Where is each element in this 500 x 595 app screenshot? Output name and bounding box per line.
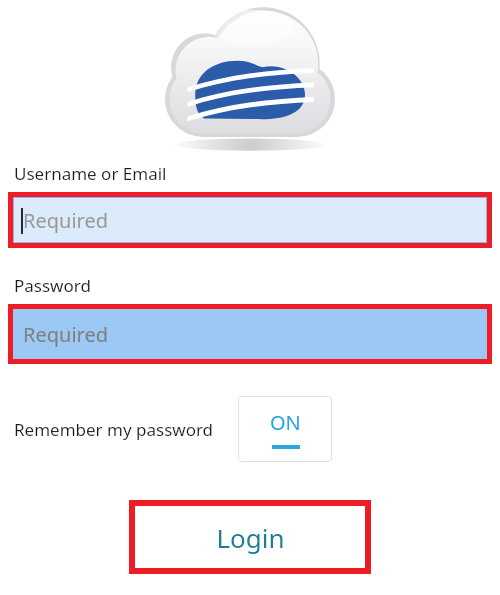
button[interactable]: Remember my password toggle, ON xyxy=(238,396,332,462)
staticText: Login xyxy=(216,520,285,555)
staticText: Password xyxy=(14,274,91,297)
button[interactable]: Required xyxy=(13,197,487,243)
button[interactable]: Required xyxy=(13,309,487,359)
staticText: Remember my password xyxy=(14,418,214,441)
staticText: Username or Email xyxy=(14,162,167,185)
button[interactable]: Login xyxy=(135,506,365,568)
staticText: ON xyxy=(270,409,301,436)
staticText: Required xyxy=(23,321,108,348)
staticText: Required xyxy=(23,207,108,234)
